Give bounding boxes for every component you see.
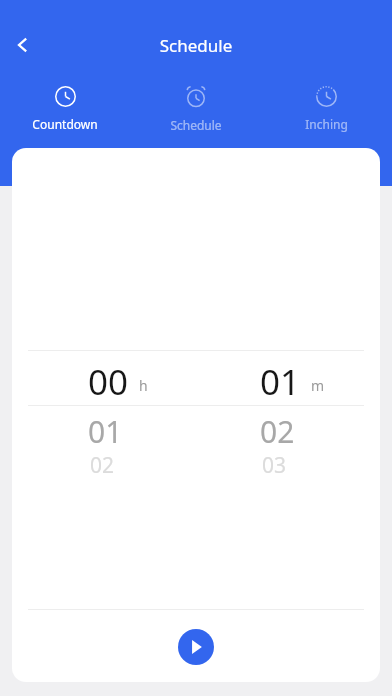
staticText: 02: [90, 451, 115, 480]
staticText: m: [311, 376, 325, 395]
staticText: 00: [88, 358, 129, 400]
staticText: Schedule: [0, 34, 392, 57]
staticText: 01: [88, 411, 123, 452]
staticText: Schedule: [170, 117, 222, 133]
button[interactable]: 00: [88, 350, 208, 470]
button[interactable]: Start: [178, 629, 214, 665]
staticText: 01: [260, 358, 301, 400]
staticText: h: [139, 376, 148, 395]
button[interactable]: Schedule: [130, 82, 261, 137]
staticText: Inching: [305, 116, 348, 132]
button[interactable]: Inching: [261, 82, 392, 136]
staticText: 02: [260, 411, 295, 452]
button[interactable]: Back: [4, 26, 42, 64]
staticText: Countdown: [32, 116, 98, 132]
button[interactable]: Countdown: [0, 82, 130, 136]
button[interactable]: 01: [260, 350, 380, 470]
staticText: 03: [262, 451, 287, 480]
